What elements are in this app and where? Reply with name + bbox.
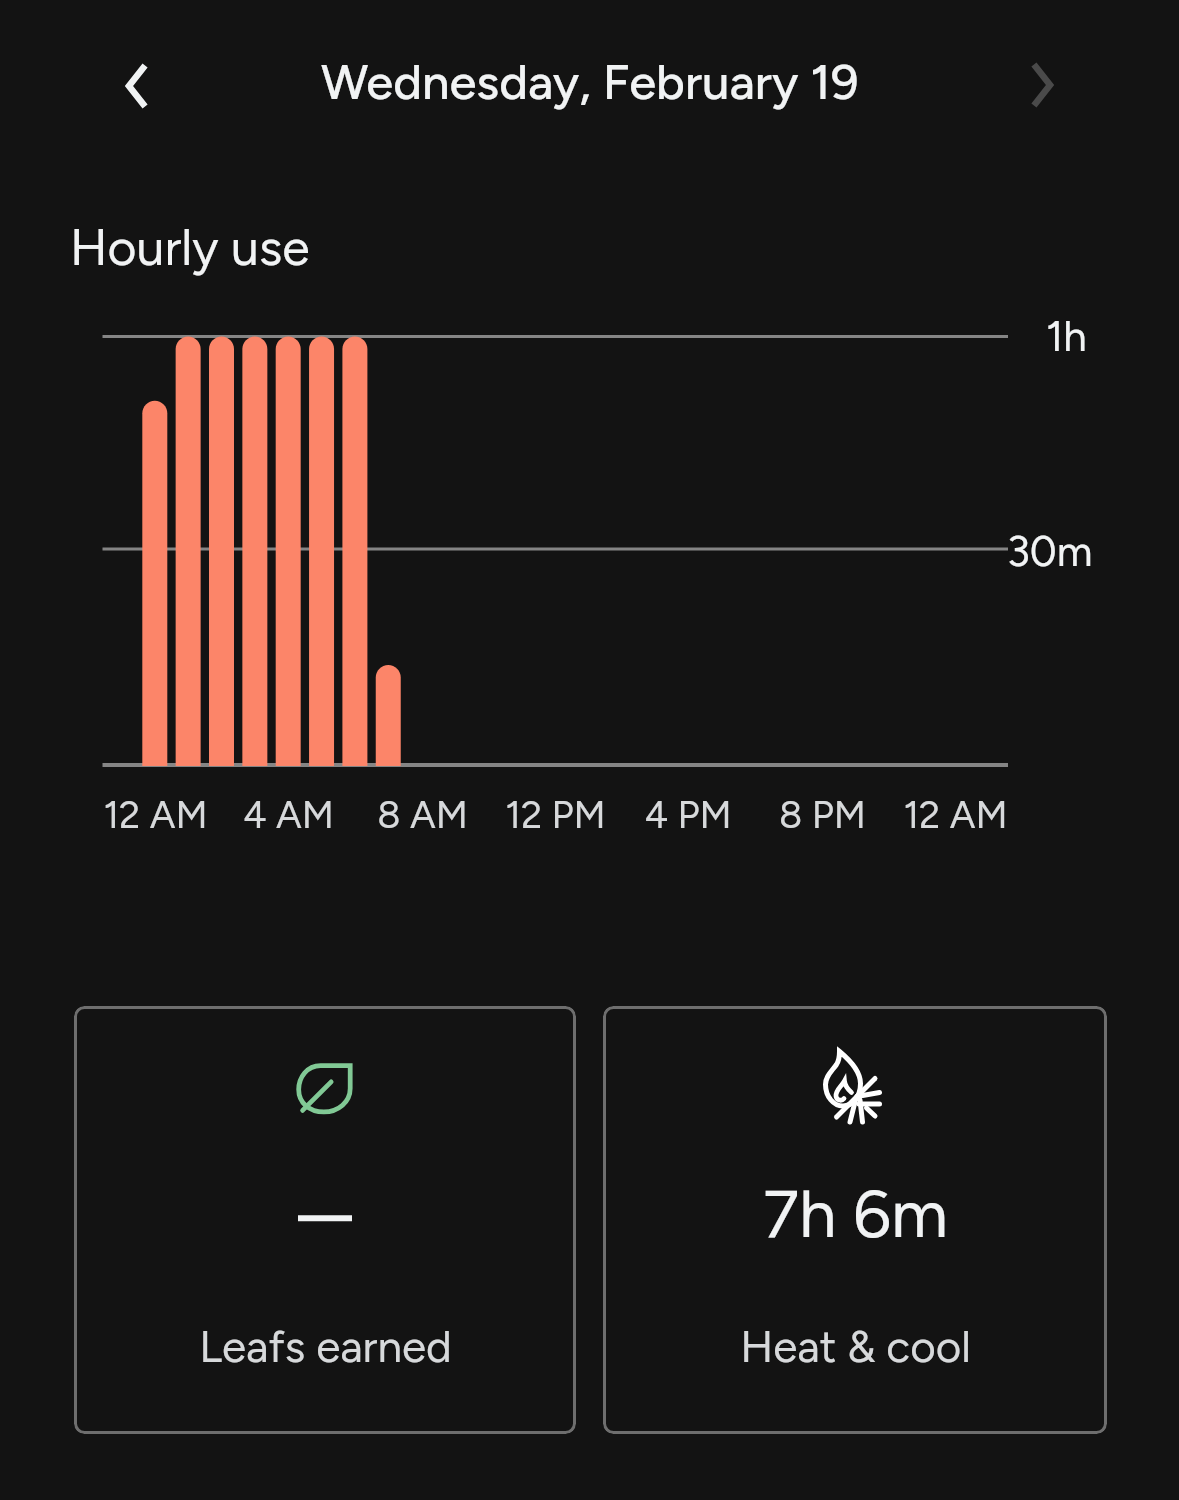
- staticText: 12 AM: [103, 792, 208, 838]
- button[interactable]: Leafs earned: [74, 1006, 576, 1434]
- staticText: 4 PM: [644, 792, 732, 838]
- button[interactable]: Previous day: [93, 42, 181, 130]
- staticText: 1h: [1046, 311, 1087, 361]
- button[interactable]: 7h 6m: [603, 1006, 1107, 1434]
- button[interactable]: Next day: [998, 41, 1086, 129]
- staticText: 30m: [1007, 526, 1093, 576]
- staticText: Hourly use: [70, 217, 310, 277]
- staticText: 4 AM: [243, 792, 334, 838]
- staticText: 8 AM: [377, 792, 468, 838]
- staticText: Heat & cool: [740, 1320, 971, 1373]
- staticText: Leafs earned: [199, 1320, 452, 1373]
- staticText: 7h 6m: [763, 1173, 948, 1253]
- staticText: Wednesday, February 19: [321, 52, 859, 111]
- staticText: 12 PM: [505, 792, 606, 838]
- staticText: 8 PM: [779, 792, 866, 838]
- staticText: 12 AM: [903, 792, 1008, 838]
